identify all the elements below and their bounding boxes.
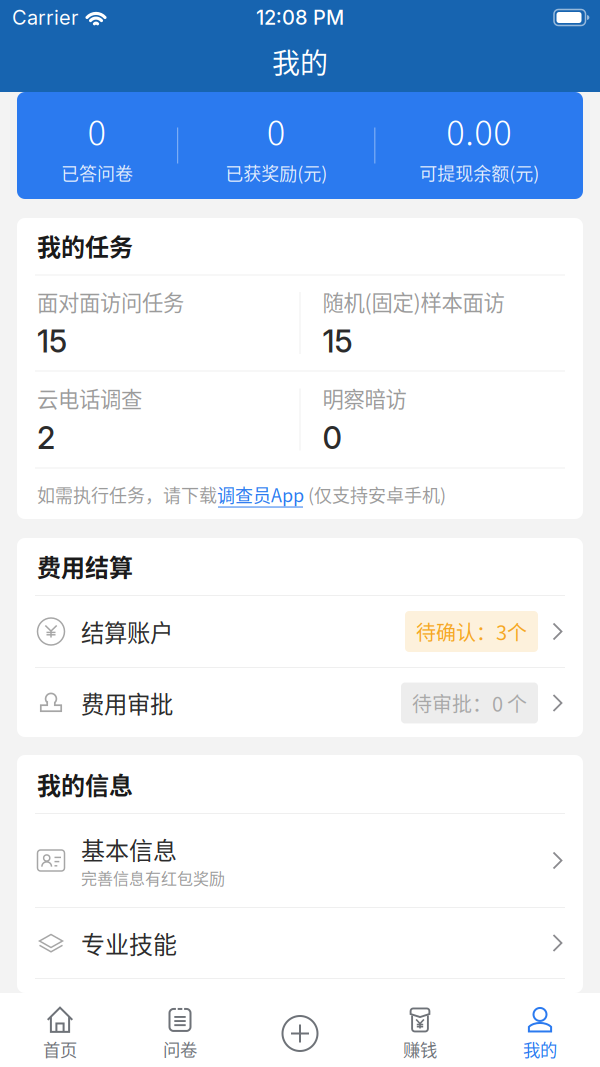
staticText: 0 xyxy=(267,105,286,156)
staticText: 2 xyxy=(37,419,55,456)
button[interactable]: 专业技能 xyxy=(17,908,583,978)
staticText: 调查员App xyxy=(217,481,304,508)
button[interactable]: 调查员App xyxy=(217,481,304,508)
staticText: 我的 xyxy=(272,41,328,82)
button[interactable]: 基本信息 xyxy=(17,814,583,907)
staticText: 完善信息有红包奖励 xyxy=(81,866,225,889)
staticText: 随机(固定)样本面访 xyxy=(322,286,504,317)
staticText: 明察暗访 xyxy=(322,382,406,413)
staticText: 基本信息 xyxy=(81,831,177,866)
staticText: 我的信息 xyxy=(37,767,133,801)
button[interactable]: 我的 xyxy=(480,993,600,1067)
staticText: 15 xyxy=(37,323,67,360)
staticText: 可提现余额(元) xyxy=(419,160,539,186)
staticText: 已获奖励(元) xyxy=(225,160,327,186)
staticText: 0.00 xyxy=(446,105,512,156)
staticText: (仅支持安卓手机) xyxy=(304,481,446,508)
button[interactable]: 首页 xyxy=(0,993,120,1067)
staticText: 我的 xyxy=(523,1036,557,1062)
staticText: 我的任务 xyxy=(37,228,133,263)
staticText: 已答问卷 xyxy=(61,160,133,186)
button[interactable]: 结算账户 xyxy=(17,596,583,667)
staticText: 费用审批 xyxy=(81,686,173,720)
staticText: 0 xyxy=(322,419,341,456)
staticText: 12:08 PM xyxy=(256,5,344,30)
button[interactable]: 问卷 xyxy=(120,993,240,1067)
staticText: 待确认：3个 xyxy=(416,617,527,646)
button[interactable]: 费用审批 xyxy=(17,668,583,738)
staticText: 费用结算 xyxy=(37,549,133,583)
staticText: 专业技能 xyxy=(81,926,177,960)
staticText: 赚钱 xyxy=(403,1036,437,1062)
button[interactable]: 赚钱 xyxy=(360,993,480,1067)
staticText: 待审批：0 个 xyxy=(412,688,527,717)
staticText: 结算账户 xyxy=(81,615,173,648)
staticText: 云电话调查 xyxy=(37,382,142,413)
staticText: Carrier xyxy=(12,5,78,30)
staticText: 问卷 xyxy=(163,1036,197,1062)
staticText: 首页 xyxy=(43,1036,77,1062)
staticText: 如需执行任务，请下载 xyxy=(37,481,217,508)
staticText: 0 xyxy=(87,105,106,156)
staticText: 15 xyxy=(322,323,352,360)
button[interactable]: 新建 xyxy=(240,993,360,1067)
staticText: 面对面访问任务 xyxy=(37,286,184,317)
